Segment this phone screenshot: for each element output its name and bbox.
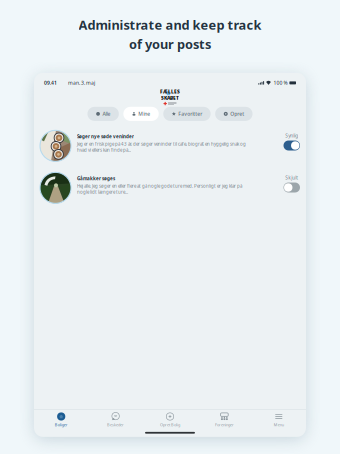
staticText: Menu [274,422,284,427]
button[interactable]: Foreninger [197,412,252,427]
button[interactable]: Beskeder [88,412,143,427]
staticText: Synlig [285,132,298,139]
staticText: Mine [138,110,150,117]
staticText: Beskeder [107,422,124,427]
button[interactable]: Gåmakker søges [34,167,306,209]
staticText: of your posts [129,35,211,53]
staticText: Favoritter [178,110,202,117]
button[interactable]: Boliger [34,412,88,427]
button[interactable]: Menu [252,412,306,427]
staticText: Alle [102,110,110,117]
staticText: Skjult [285,174,298,181]
button[interactable]: Alle [87,107,119,121]
staticText: FÆLLES [160,88,180,95]
staticText: Administrate and keep track [78,16,261,33]
staticText: Opret [230,110,244,117]
button[interactable]: Søger nye søde veninder [34,125,306,167]
staticText: 09.41 [44,79,57,86]
button[interactable]: Favoritter [163,107,211,121]
staticText: Søger nye søde veninder [77,133,134,140]
staticText: Boliger [55,422,68,427]
button[interactable]: Opret Bolig [143,412,197,427]
staticText: man. 3. maj [68,79,95,86]
button[interactable]: Mine [123,107,159,121]
staticText: SKABET [161,95,179,101]
staticText: Gåmakker søges [77,175,115,182]
staticText: Opret Bolig [160,422,180,427]
staticText: nogle lidt længere ture... [77,189,128,195]
button[interactable]: Opret [215,107,253,121]
staticText: Hej alle. Jeg søger en eller flere at gå… [77,183,242,189]
staticText: 100 % [273,79,287,86]
staticText: hvad vi ellers kan finde på... [77,147,131,153]
staticText: Jeg er en frisk pige på 43 år, der søger… [77,141,246,147]
staticText: Foreninger [215,422,234,427]
